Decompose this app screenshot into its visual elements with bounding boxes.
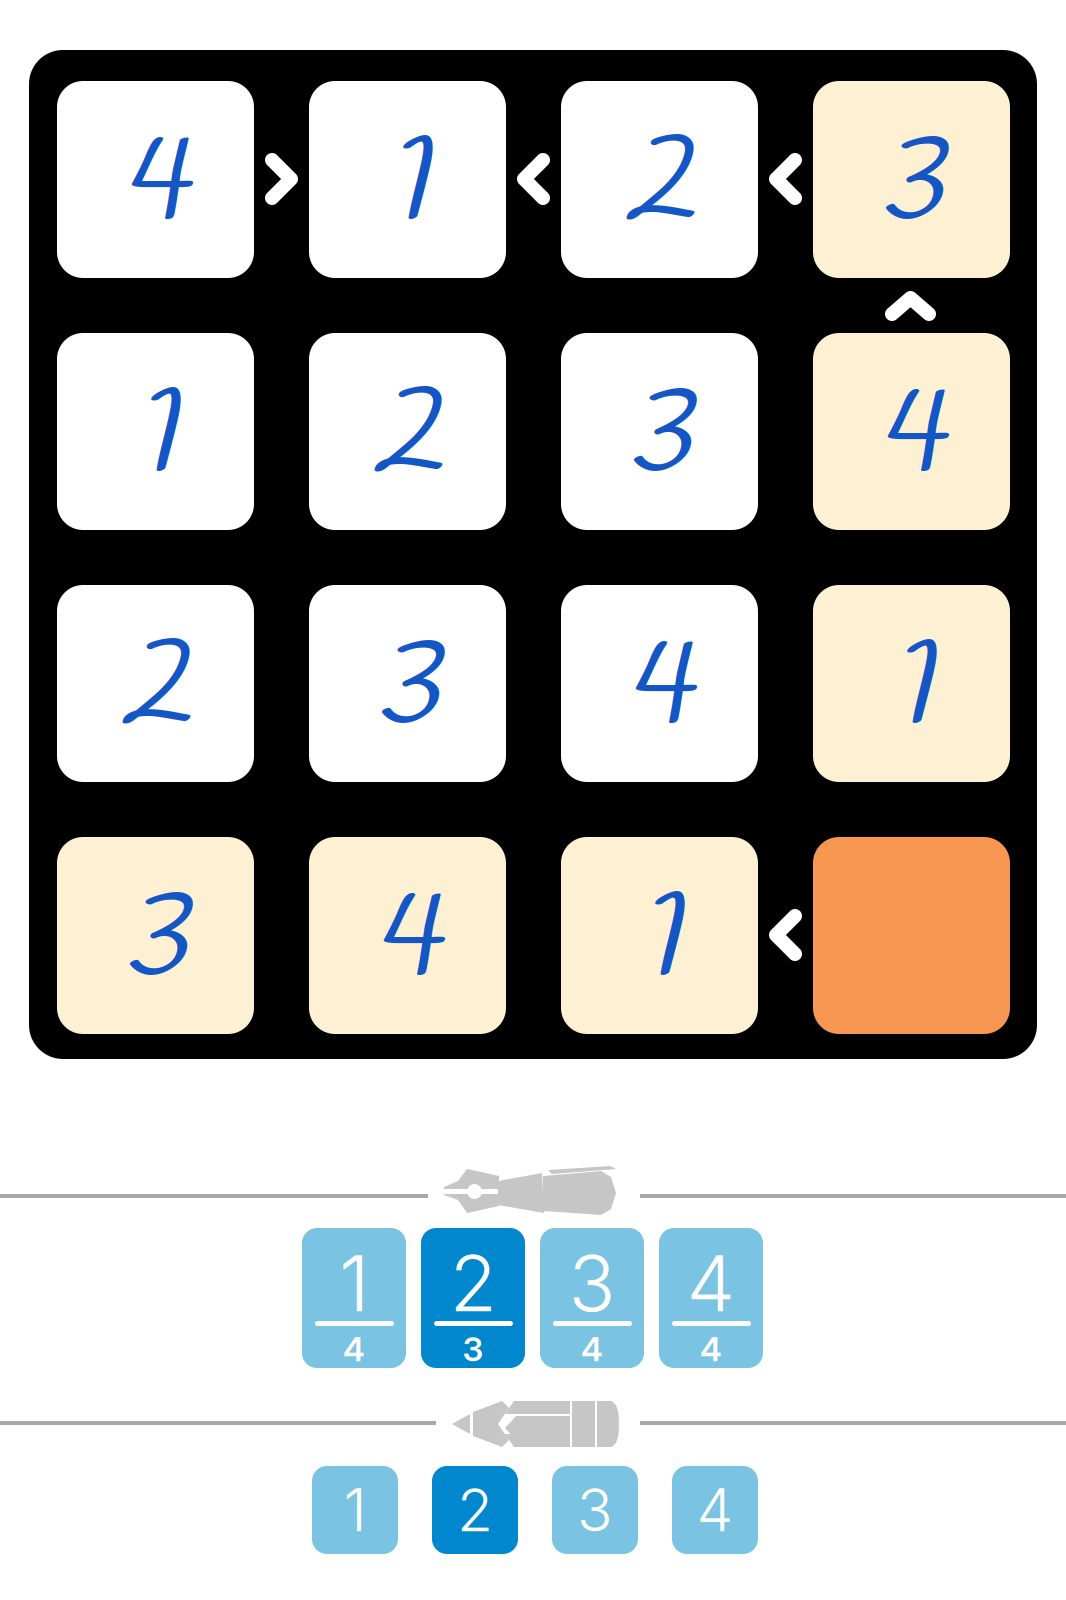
staticText: 3 — [878, 102, 944, 269]
staticText: 1 — [386, 102, 428, 269]
button[interactable]: 1 — [813, 585, 1010, 782]
staticText: 4 — [581, 1329, 603, 1369]
button[interactable]: 4 — [57, 81, 254, 278]
staticText: 4 — [696, 1474, 733, 1545]
button[interactable]: 1 — [57, 333, 254, 530]
staticText: 1 — [339, 1236, 369, 1330]
button[interactable]: 2 — [309, 333, 506, 530]
staticText: 4 — [343, 1329, 365, 1369]
button[interactable]: 3 — [552, 1466, 638, 1554]
staticText: 1 — [638, 858, 680, 1025]
staticText: 4 — [121, 102, 189, 269]
staticText: 1 — [134, 354, 176, 521]
staticText: 4 — [877, 354, 945, 521]
button[interactable]: 4 — [813, 333, 1010, 530]
staticText: 2 — [624, 102, 695, 269]
button[interactable]: 2 — [432, 1466, 518, 1554]
button[interactable]: 4 — [672, 1466, 758, 1554]
button[interactable]: 4 — [309, 837, 506, 1034]
staticText: 3 — [462, 1329, 483, 1369]
staticText: 1 — [890, 606, 932, 773]
button[interactable]: 3 — [561, 333, 758, 530]
button[interactable]: 3 — [309, 585, 506, 782]
button[interactable]: 4 — [659, 1228, 763, 1368]
staticText: 1 — [343, 1474, 366, 1545]
button[interactable]: 1 — [302, 1228, 406, 1368]
button[interactable]: 2 — [561, 81, 758, 278]
staticText: 3 — [577, 1474, 613, 1545]
staticText: 2 — [449, 1236, 496, 1330]
staticText: 2 — [457, 1474, 493, 1545]
button[interactable]: 1 — [561, 837, 758, 1034]
staticText: 3 — [626, 354, 692, 521]
staticText: 4 — [373, 858, 441, 1025]
button[interactable]: 1 — [312, 1466, 398, 1554]
staticText: 2 — [372, 354, 443, 521]
button[interactable]: 3 — [540, 1228, 644, 1368]
button[interactable]: 3 — [813, 81, 1010, 278]
staticText: 3 — [374, 606, 440, 773]
button[interactable]: 4 — [561, 585, 758, 782]
button[interactable] — [813, 837, 1010, 1034]
button[interactable]: 3 — [57, 837, 254, 1034]
staticText: 4 — [700, 1329, 722, 1369]
button[interactable]: 2 — [421, 1228, 525, 1368]
staticText: 2 — [120, 606, 191, 773]
staticText: 4 — [625, 606, 693, 773]
staticText: 4 — [686, 1236, 735, 1330]
button[interactable]: 2 — [57, 585, 254, 782]
staticText: 3 — [122, 858, 188, 1025]
button[interactable]: 1 — [309, 81, 506, 278]
staticText: 3 — [568, 1236, 615, 1330]
